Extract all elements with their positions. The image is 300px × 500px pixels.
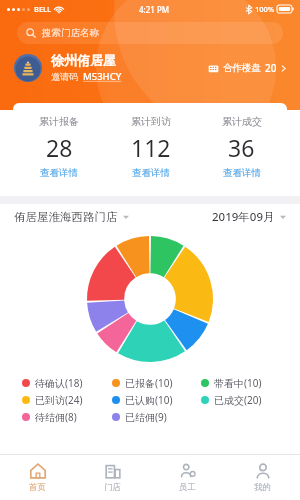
staticText: 待结佣(8): [35, 410, 77, 424]
staticText: 已报备(10): [125, 376, 173, 390]
button[interactable]: 累计报备: [13, 103, 105, 190]
button[interactable]: 带看中(10): [201, 376, 262, 390]
button[interactable]: 已到访(24): [22, 393, 83, 407]
button[interactable]: 我的: [225, 455, 300, 500]
staticText: 4:21 PM: [139, 4, 170, 15]
staticText: 累计成交: [222, 115, 262, 128]
button[interactable]: 已成交(20): [201, 393, 262, 407]
button[interactable]: 已认购(10): [112, 393, 173, 407]
staticText: 侑居屋淮海西路门店: [14, 210, 118, 224]
staticText: 已认购(10): [125, 393, 173, 407]
staticText: 首页: [29, 482, 46, 493]
staticText: 已结佣(9): [125, 410, 167, 424]
button[interactable]: 侑居屋淮海西路门店: [14, 210, 129, 224]
button[interactable]: 首页: [0, 455, 75, 500]
staticText: 门店: [104, 482, 121, 493]
button[interactable]: 待结佣(8): [22, 410, 77, 424]
staticText: 查看详情: [40, 167, 78, 179]
staticText: 已到访(24): [35, 393, 83, 407]
staticText: BELL: [34, 4, 52, 14]
button[interactable]: 已结佣(9): [112, 410, 167, 424]
button[interactable]: 待确认(18): [22, 376, 83, 390]
button[interactable]: 累计成交: [196, 103, 287, 190]
staticText: 员工: [179, 482, 196, 493]
staticText: 100%: [255, 4, 275, 14]
button[interactable]: 员工: [150, 455, 225, 500]
staticText: 28: [46, 132, 73, 163]
button[interactable]: 搜索门店名称: [17, 22, 283, 44]
staticText: 2019年09月: [212, 209, 275, 225]
staticText: M53HCY: [83, 70, 122, 83]
staticText: 查看详情: [223, 167, 261, 179]
staticText: 112: [131, 132, 171, 163]
button[interactable]: 已报备(10): [112, 376, 173, 390]
button[interactable]: 累计到访: [105, 103, 196, 190]
button[interactable]: Profile avatar: [14, 54, 42, 82]
button[interactable]: 门店: [75, 455, 150, 500]
staticText: 累计报备: [39, 115, 79, 128]
staticText: 合作楼盘: [223, 62, 261, 74]
staticText: 查看详情: [132, 167, 170, 179]
staticText: 20: [265, 61, 277, 75]
button[interactable]: 2019年09月: [212, 209, 286, 225]
staticText: 36: [228, 132, 255, 163]
staticText: 已成交(20): [214, 393, 262, 407]
staticText: 邀请码: [51, 71, 78, 82]
staticText: 我的: [254, 482, 271, 493]
staticText: 搜索门店名称: [42, 27, 99, 39]
staticText: 累计到访: [131, 115, 171, 128]
button[interactable]: 合作楼盘: [206, 57, 289, 79]
staticText: 待确认(18): [35, 376, 83, 390]
staticText: 带看中(10): [214, 376, 262, 390]
staticText: 徐州侑居屋: [51, 52, 116, 68]
